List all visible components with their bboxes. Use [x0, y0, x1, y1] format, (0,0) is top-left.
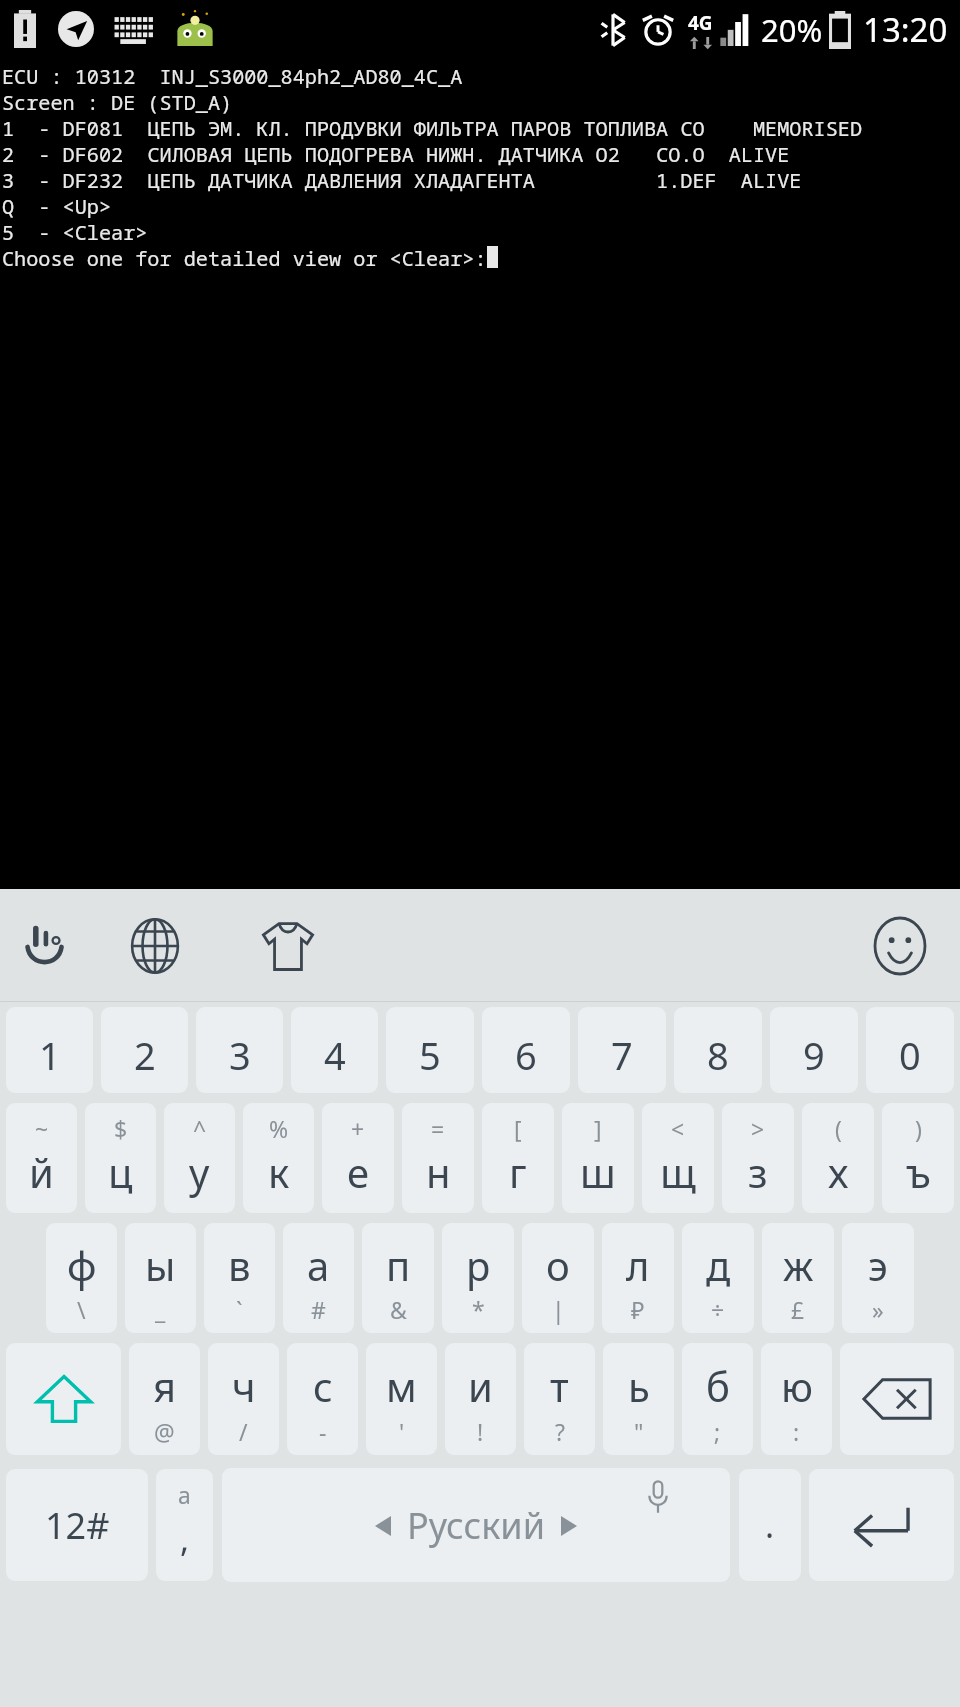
button[interactable]: д — [682, 1223, 754, 1333]
button[interactable]: Emoji — [840, 889, 960, 1002]
button[interactable]: 8 — [674, 1007, 762, 1093]
staticText: ц — [108, 1145, 133, 1199]
button[interactable]: 3 — [196, 1007, 283, 1093]
button[interactable]: а — [156, 1469, 213, 1581]
button[interactable]: ^ — [164, 1103, 235, 1213]
staticText: и — [468, 1359, 493, 1413]
staticText: ш — [580, 1145, 616, 1199]
button[interactable]: $ — [85, 1103, 156, 1213]
staticText: о — [546, 1238, 570, 1292]
button[interactable]: ] — [562, 1103, 634, 1213]
button[interactable]: э — [842, 1223, 914, 1333]
staticText: " — [634, 1416, 644, 1447]
button[interactable]: л — [602, 1223, 674, 1333]
staticText: Choose one for detailed view or <Clear>: — [2, 244, 487, 270]
button[interactable]: и — [445, 1343, 516, 1455]
button[interactable]: ~ — [6, 1103, 77, 1213]
button[interactable]: Backspace — [840, 1343, 954, 1455]
staticText: ( — [835, 1113, 842, 1144]
button[interactable]: Русский — [222, 1468, 730, 1582]
button[interactable]: о — [522, 1223, 594, 1333]
staticText: в — [228, 1238, 251, 1292]
button[interactable]: ( — [802, 1103, 874, 1213]
button[interactable]: ы — [125, 1223, 196, 1333]
staticText: ECU : 10312 INJ_S3000_84ph2_AD80_4C_A — [2, 62, 463, 88]
button[interactable]: т — [524, 1343, 595, 1455]
button[interactable]: Enter — [809, 1469, 954, 1581]
button[interactable]: Shift — [6, 1343, 121, 1455]
button[interactable]: 7 — [578, 1007, 666, 1093]
button[interactable]: Themes — [220, 889, 355, 1002]
staticText: 20% — [761, 9, 823, 51]
staticText: д — [706, 1238, 731, 1292]
staticText: & — [390, 1294, 407, 1325]
button[interactable]: 1 — [6, 1007, 93, 1093]
staticText: у — [189, 1145, 210, 1199]
staticText: к — [268, 1145, 290, 1199]
button[interactable]: ) — [882, 1103, 954, 1213]
staticText: 9 — [803, 1029, 825, 1081]
button[interactable]: Swiftkey menu — [0, 889, 90, 1002]
button[interactable]: < — [642, 1103, 714, 1213]
staticText: 4 — [324, 1029, 346, 1081]
button[interactable]: в — [204, 1223, 275, 1333]
button[interactable]: + — [322, 1103, 394, 1213]
staticText: ч — [232, 1359, 256, 1413]
button[interactable]: % — [243, 1103, 314, 1213]
staticText: @ — [154, 1416, 175, 1447]
staticText: ) — [915, 1113, 922, 1144]
staticText: ₽ — [631, 1294, 645, 1325]
staticText: м — [386, 1359, 417, 1413]
button[interactable]: ф — [46, 1223, 117, 1333]
staticText: ; — [714, 1416, 721, 1447]
staticText: я — [153, 1359, 177, 1413]
staticText: т — [550, 1359, 569, 1413]
staticText: _ — [155, 1294, 166, 1325]
staticText: . — [765, 1502, 775, 1548]
staticText: + — [351, 1113, 365, 1144]
button[interactable]: а — [283, 1223, 354, 1333]
staticText: = — [431, 1113, 445, 1144]
staticText: 1 - DF081 ЦЕПЬ ЭМ. КЛ. ПРОДУВКИ ФИЛЬТРА … — [2, 114, 862, 140]
staticText: й — [29, 1145, 54, 1199]
button[interactable]: с — [287, 1343, 358, 1455]
button[interactable]: 9 — [770, 1007, 858, 1093]
button[interactable]: Languages — [90, 889, 220, 1002]
button[interactable]: > — [722, 1103, 794, 1213]
staticText: п — [386, 1238, 411, 1292]
staticText: $ — [114, 1113, 128, 1144]
staticText: ÷ — [711, 1294, 725, 1325]
button[interactable]: ю — [761, 1343, 832, 1455]
staticText: н — [426, 1145, 451, 1199]
staticText: 12# — [45, 1501, 110, 1550]
staticText: 4G — [688, 10, 713, 36]
button[interactable]: 2 — [101, 1007, 188, 1093]
staticText: б — [706, 1359, 730, 1413]
staticText: < — [671, 1113, 685, 1144]
button[interactable]: 0 — [866, 1007, 954, 1093]
button[interactable]: 12# — [6, 1469, 148, 1581]
staticText: 5 - <Clear> — [2, 218, 148, 244]
staticText: 1 — [39, 1029, 61, 1081]
staticText: л — [626, 1238, 650, 1292]
staticText: г — [509, 1145, 527, 1199]
button[interactable]: 5 — [386, 1007, 474, 1093]
staticText: # — [311, 1294, 326, 1325]
staticText: % — [269, 1113, 289, 1144]
button[interactable]: м — [366, 1343, 437, 1455]
button[interactable]: = — [402, 1103, 474, 1213]
button[interactable]: ж — [762, 1223, 834, 1333]
staticText: а — [178, 1479, 191, 1510]
button[interactable]: п — [362, 1223, 434, 1333]
staticText: 2 - DF602 СИЛОВАЯ ЦЕПЬ ПОДОГРЕВА НИЖН. Д… — [2, 140, 790, 166]
button[interactable]: 6 — [482, 1007, 570, 1093]
button[interactable]: ч — [208, 1343, 279, 1455]
button[interactable]: 4 — [291, 1007, 378, 1093]
button[interactable]: я — [129, 1343, 200, 1455]
button[interactable]: б — [682, 1343, 753, 1455]
button[interactable]: ь — [603, 1343, 674, 1455]
button[interactable]: р — [442, 1223, 514, 1333]
button[interactable]: [ — [482, 1103, 554, 1213]
button[interactable]: . — [739, 1469, 801, 1581]
staticText: ~ — [35, 1113, 49, 1144]
